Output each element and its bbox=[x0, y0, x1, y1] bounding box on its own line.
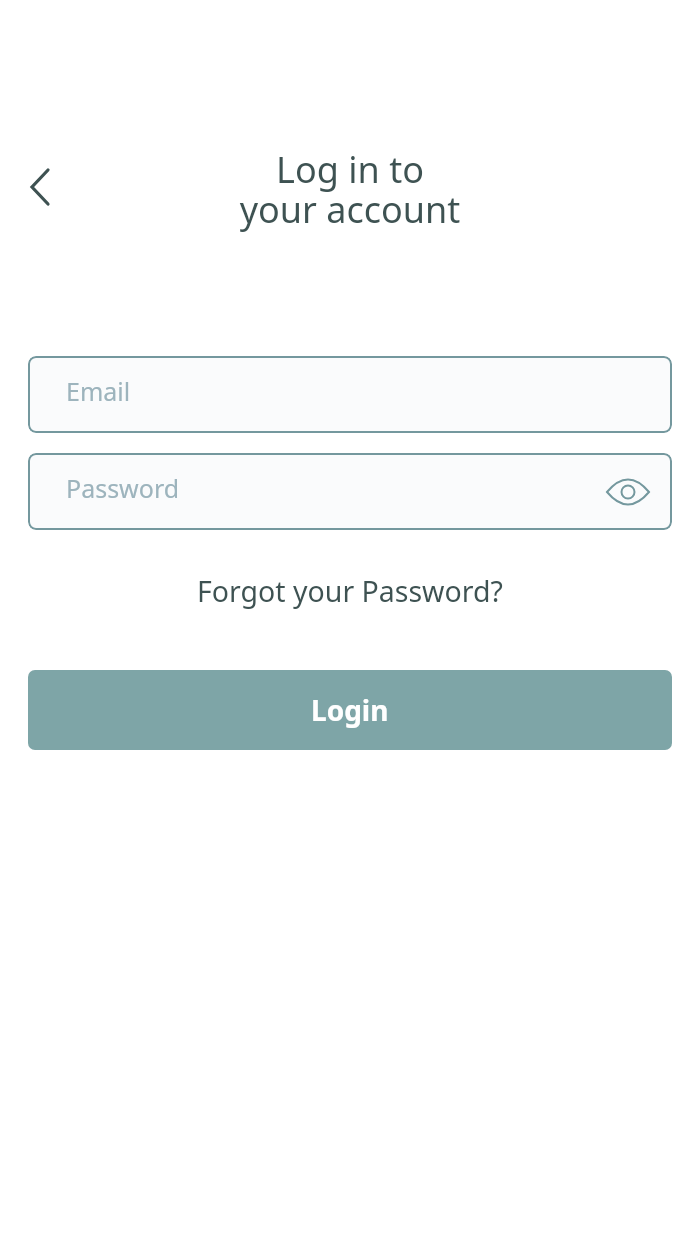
staticText: Password bbox=[66, 471, 180, 505]
button[interactable]: Forgot your Password? bbox=[197, 572, 503, 611]
button[interactable] bbox=[16, 163, 64, 211]
staticText: Email bbox=[66, 374, 131, 408]
staticText: Login bbox=[311, 691, 389, 729]
button[interactable]: Password bbox=[28, 453, 672, 530]
button[interactable]: Login bbox=[28, 670, 672, 750]
button[interactable] bbox=[606, 470, 650, 514]
staticText: Log in to your account bbox=[0, 145, 700, 233]
button[interactable]: Email bbox=[28, 356, 672, 433]
